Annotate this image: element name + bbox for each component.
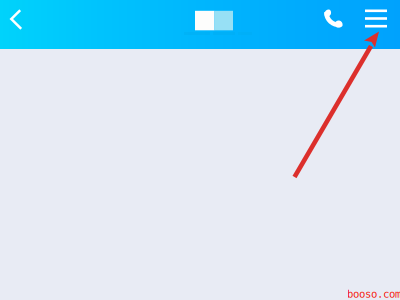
button[interactable]: Menu: [354, 0, 398, 49]
staticText: booso.com: [347, 288, 400, 300]
button[interactable]: Call: [312, 0, 356, 49]
button[interactable]: Back: [0, 0, 39, 49]
